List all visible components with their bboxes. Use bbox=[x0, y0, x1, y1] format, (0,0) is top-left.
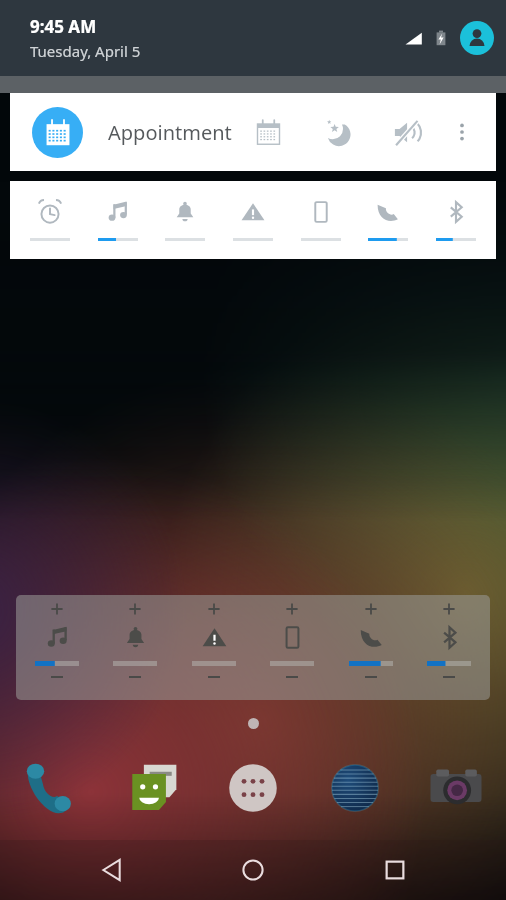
button[interactable]: Phone volume control bbox=[261, 595, 323, 700]
button[interactable]: Call volume control bbox=[340, 595, 402, 700]
button[interactable]: Appointment bbox=[10, 93, 496, 171]
button[interactable]: Alert volume control bbox=[183, 595, 245, 700]
button[interactable]: Ring volume control bbox=[104, 595, 166, 700]
button[interactable]: Call volume bbox=[362, 199, 414, 241]
staticText: Appointment bbox=[108, 119, 232, 146]
button[interactable]: Home bbox=[223, 840, 283, 900]
button[interactable]: Alert volume bbox=[227, 199, 279, 241]
button[interactable]: Alarm volume bbox=[24, 199, 76, 241]
button[interactable]: Recent apps bbox=[365, 840, 425, 900]
staticText: 9:45 AM bbox=[30, 15, 97, 38]
button[interactable]: Messaging bbox=[116, 752, 188, 824]
button[interactable]: Mute bbox=[384, 110, 428, 154]
button[interactable]: Ring volume bbox=[159, 199, 211, 241]
button[interactable]: User profile bbox=[460, 21, 494, 55]
button[interactable]: Phone volume bbox=[295, 199, 347, 241]
button[interactable]: Back bbox=[82, 840, 142, 900]
button[interactable]: Media volume bbox=[92, 199, 144, 241]
button[interactable]: Browser bbox=[319, 752, 391, 824]
button[interactable]: Calendar bbox=[246, 110, 290, 154]
button[interactable]: Bluetooth volume bbox=[430, 199, 482, 241]
button[interactable]: More options bbox=[442, 112, 482, 152]
button[interactable]: Media volume control bbox=[26, 595, 88, 700]
button[interactable]: Do not disturb bbox=[315, 110, 359, 154]
button[interactable]: Bluetooth volume control bbox=[418, 595, 480, 700]
staticText: Tuesday, April 5 bbox=[30, 41, 141, 61]
button[interactable]: Phone bbox=[14, 752, 86, 824]
button[interactable]: Camera bbox=[420, 752, 492, 824]
button[interactable]: All apps bbox=[217, 752, 289, 824]
